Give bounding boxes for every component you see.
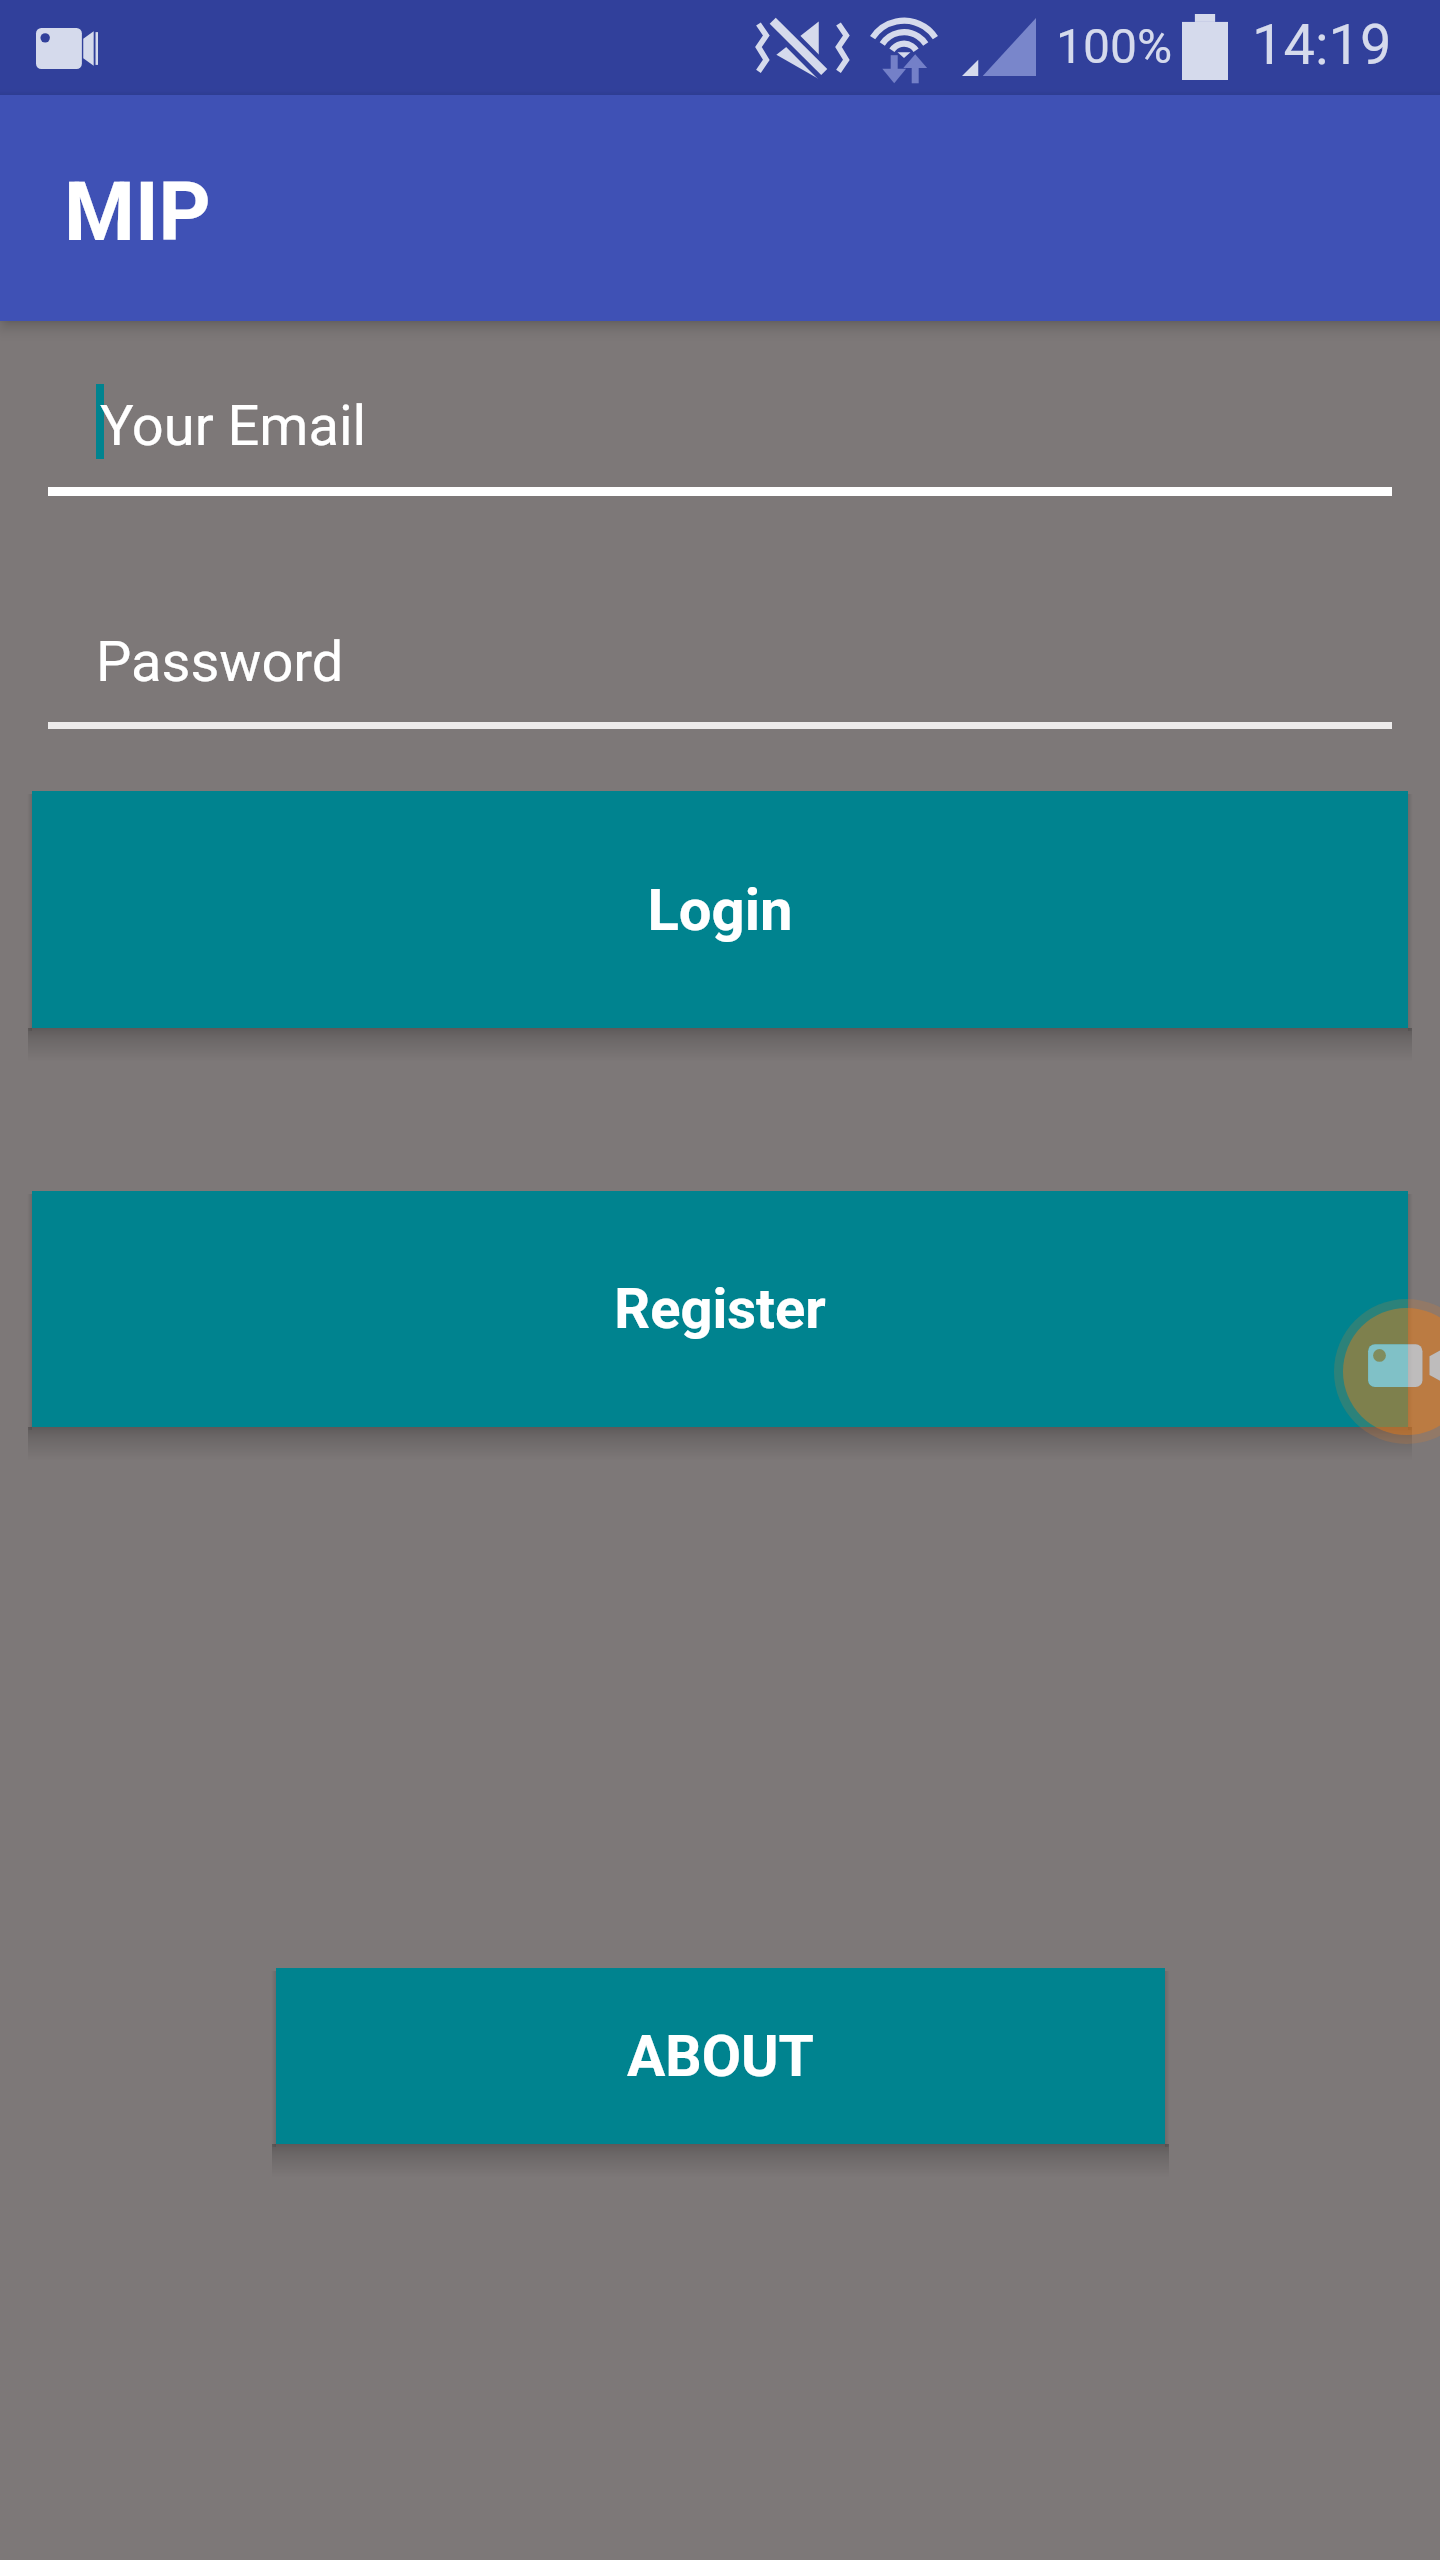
staticText: Login xyxy=(647,876,793,944)
button[interactable]: Login xyxy=(32,791,1408,1028)
button[interactable]: ABOUT xyxy=(276,1968,1165,2144)
staticText: Register xyxy=(614,1276,826,1342)
button[interactable]: Password xyxy=(48,610,1392,729)
staticText: MIP xyxy=(64,165,211,260)
staticText: 100% xyxy=(1056,18,1173,74)
button[interactable]: Your Email xyxy=(48,370,1392,496)
button[interactable]: Register xyxy=(32,1191,1408,1427)
button[interactable]: Start video call xyxy=(1334,1299,1440,1444)
staticText: 14:19 xyxy=(1252,12,1392,78)
staticText: ABOUT xyxy=(627,2023,814,2090)
staticText: Your Email xyxy=(100,393,367,459)
staticText: Password xyxy=(96,629,344,695)
